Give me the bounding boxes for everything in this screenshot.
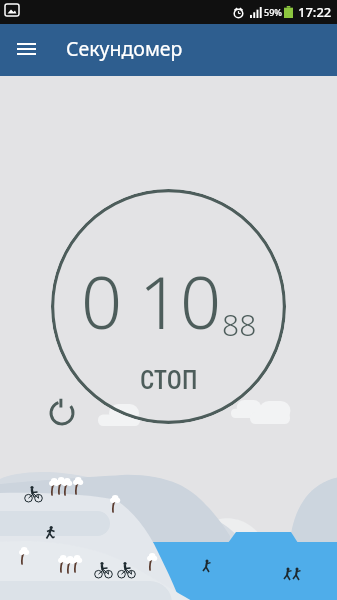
staticText: 17:22 bbox=[298, 3, 332, 21]
staticText: 10 bbox=[139, 252, 222, 350]
button[interactable]: Menu bbox=[5, 29, 48, 72]
staticText: 88 bbox=[222, 304, 257, 345]
button[interactable]: Reset bbox=[45, 396, 79, 430]
button[interactable]: 0 bbox=[51, 189, 286, 424]
staticText: Секундомер bbox=[66, 35, 183, 62]
staticText: 59% bbox=[264, 6, 282, 18]
staticText: СТОП bbox=[140, 366, 198, 395]
staticText: 0 bbox=[81, 252, 123, 350]
